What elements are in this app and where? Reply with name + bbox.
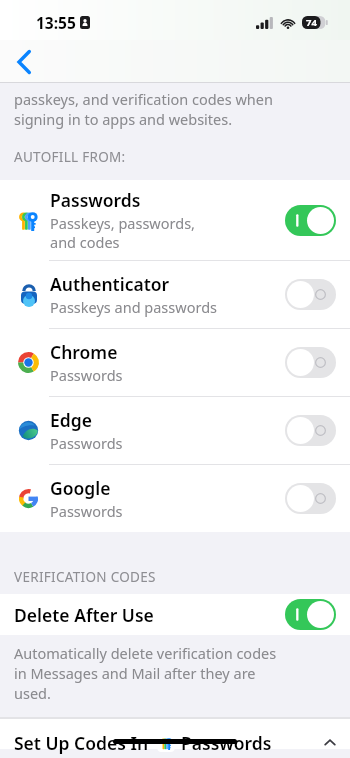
staticText: AUTOFILL FROM: [14,148,126,166]
staticText: Google [50,476,111,500]
button[interactable]: Passwords [0,180,350,260]
button[interactable]: Chrome [0,329,350,396]
button[interactable]: Off [285,347,336,378]
button[interactable]: On [285,205,336,236]
button[interactable]: Set Up Codes In [0,719,350,749]
staticText: 74 [306,16,317,29]
staticText: 13:55 [36,12,76,33]
staticText: Automatically delete verification codes … [14,643,277,703]
button[interactable]: Edge [0,397,350,464]
staticText: Passwords [50,188,141,212]
button[interactable]: Google [0,465,350,532]
button[interactable]: Delete After Use [0,594,350,635]
staticText: Passwords [50,433,123,453]
staticText: Authenticator [50,272,170,296]
staticText: Passkeys and passwords [50,297,217,317]
button[interactable]: On [285,599,336,630]
staticText: Passwords [181,731,272,755]
button[interactable]: Off [285,279,336,310]
staticText: Edge [50,408,92,432]
button[interactable]: Authenticator [0,261,350,328]
button[interactable]: Back [2,40,46,83]
staticText: Set Up Codes In [14,731,149,755]
staticText: Delete After Use [14,603,154,627]
staticText: Passwords [50,365,123,385]
button[interactable]: Off [285,483,336,514]
button[interactable]: Off [285,415,336,446]
staticText: passkeys, and verification codes when si… [14,89,273,129]
staticText: Passwords [50,501,123,521]
staticText: Passkeys, passwords, and codes [50,213,195,252]
staticText: Chrome [50,340,118,364]
staticText: VERIFICATION CODES [14,568,156,586]
